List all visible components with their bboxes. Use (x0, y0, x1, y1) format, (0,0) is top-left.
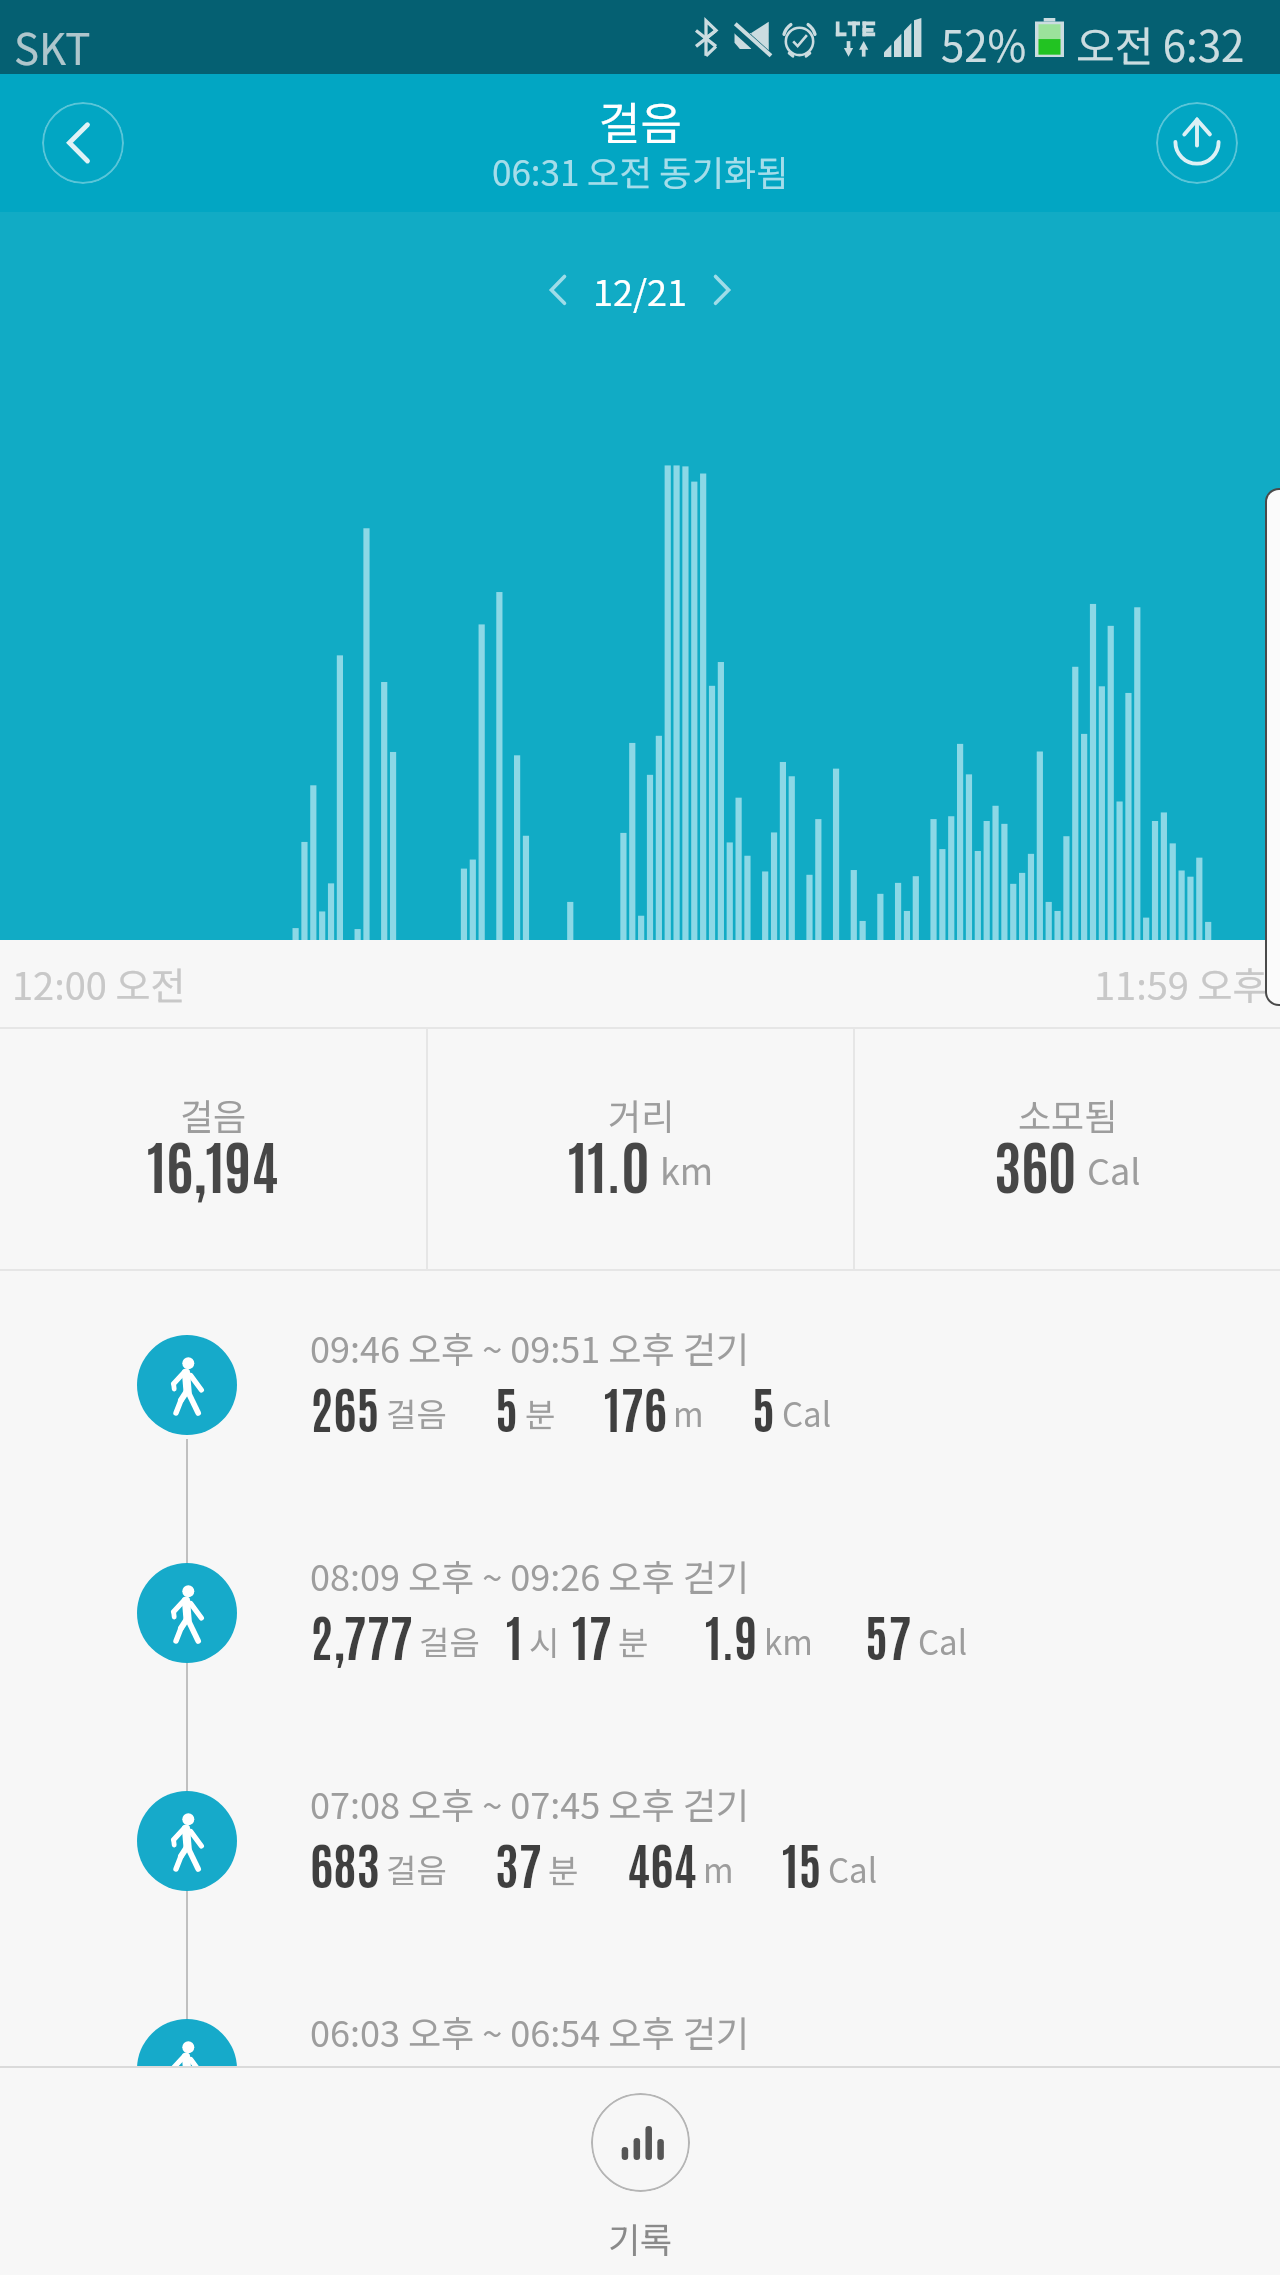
staticText: 37 (495, 1830, 542, 1895)
staticText: 176 (604, 1374, 667, 1439)
staticText: 1 (506, 1602, 523, 1667)
staticText: 07:08 오후 ~ 07:45 오후 걷기 (310, 1777, 749, 1829)
staticText: 09:46 오후 ~ 09:51 오후 걷기 (310, 1321, 749, 1373)
staticText: 12:00 오전 (12, 956, 186, 1011)
staticText: 06:03 오후 ~ 06:54 오후 걷기 (310, 2005, 749, 2057)
button[interactable]: 07:08 오후 ~ 07:45 오후 걷기 (0, 1775, 1280, 2003)
staticText: 11:59 오후 (1094, 956, 1268, 1011)
button[interactable]: 09:46 오후 ~ 09:51 오후 걷기 (0, 1319, 1280, 1547)
staticText: 360 (994, 1126, 1077, 1201)
staticText: 16,194 (147, 1126, 279, 1201)
staticText: 걸음 (386, 1845, 447, 1893)
staticText: km (660, 1143, 714, 1195)
button[interactable]: 06:03 오후 ~ 06:54 오후 걷기 (0, 2003, 1280, 2119)
button[interactable]: Previous day (529, 261, 587, 319)
staticText: 분 (548, 1845, 579, 1893)
staticText: 5 (752, 1374, 776, 1439)
staticText: 15 (782, 1830, 822, 1895)
staticText: 걸음 (386, 1389, 447, 1437)
staticText: m (673, 1389, 704, 1437)
staticText: 5 (495, 1374, 519, 1439)
button[interactable]: 걸음 (0, 1029, 426, 1269)
staticText: m (703, 1845, 734, 1893)
button[interactable]: Next day (693, 261, 751, 319)
staticText: 2,777 (310, 1602, 413, 1667)
staticText: 소모됨 (1018, 1088, 1118, 1140)
staticText: Cal (782, 1389, 832, 1437)
button[interactable]: Back (42, 102, 124, 184)
staticText: 1.9 (705, 1602, 758, 1667)
staticText: 683 (310, 1830, 380, 1895)
staticText: 11.0 (568, 1126, 650, 1201)
staticText: km (764, 1617, 813, 1665)
button[interactable]: Sync (1156, 102, 1238, 184)
staticText: 거리 (608, 1088, 675, 1140)
staticText: 시 (529, 1617, 560, 1665)
staticText: Cal (918, 1617, 968, 1665)
staticText: 265 (310, 1374, 380, 1439)
staticText: 12/21 (593, 264, 688, 316)
staticText: 분 (618, 1617, 649, 1665)
staticText: SKT (14, 16, 91, 77)
staticText: 분 (525, 1389, 556, 1437)
button[interactable]: 소모됨 (855, 1029, 1280, 1269)
button[interactable]: 기록 (591, 2093, 690, 2263)
staticText: 17 (572, 1602, 612, 1667)
staticText: 06:31 오전 동기화됨 (492, 145, 789, 196)
staticText: 52% (941, 13, 1027, 74)
staticText: 464 (627, 1830, 697, 1895)
staticText: 기록 (608, 2212, 673, 2263)
staticText: Cal (828, 1845, 878, 1893)
staticText: 08:09 오후 ~ 09:26 오후 걷기 (310, 1549, 749, 1601)
button[interactable]: 08:09 오후 ~ 09:26 오후 걷기 (0, 1547, 1280, 1775)
staticText: 걸음 (419, 1617, 480, 1665)
staticText: 57 (865, 1602, 912, 1667)
button[interactable]: 거리 (428, 1029, 853, 1269)
staticText: 오전 6:32 (1076, 13, 1245, 74)
staticText: 걸음 (180, 1088, 247, 1140)
staticText: 걸음 (599, 88, 682, 153)
staticText: Cal (1087, 1143, 1141, 1195)
